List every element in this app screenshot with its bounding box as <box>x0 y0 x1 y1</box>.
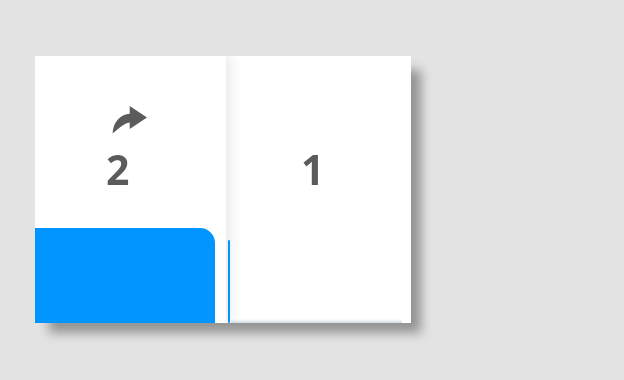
staticText: 2 <box>106 141 130 197</box>
staticText: 1 <box>301 141 325 197</box>
button[interactable]: 1 <box>35 56 411 323</box>
button[interactable] <box>35 228 215 323</box>
button[interactable]: Share <box>35 56 226 323</box>
other: Share <box>112 106 147 134</box>
